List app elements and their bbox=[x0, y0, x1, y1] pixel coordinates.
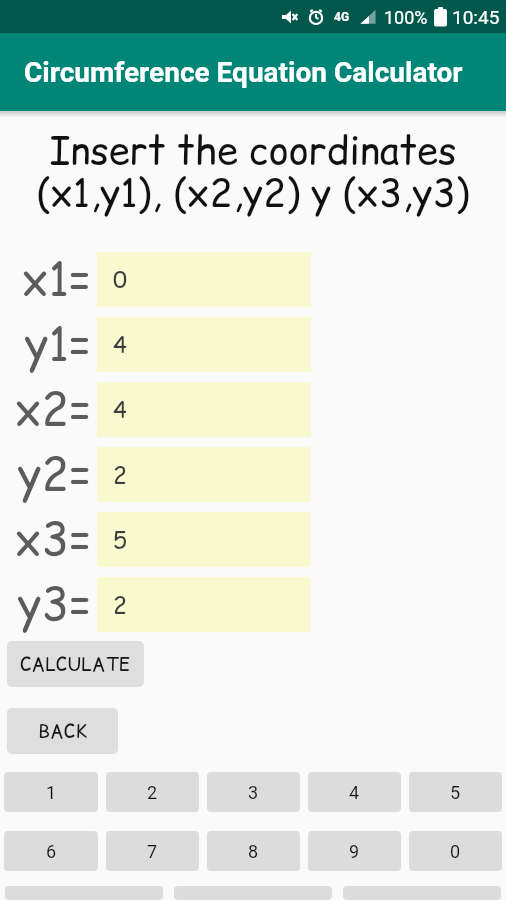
staticText: 0 bbox=[113, 264, 128, 296]
staticText: 9 bbox=[349, 841, 360, 862]
button[interactable]: 5 bbox=[97, 512, 311, 567]
button[interactable]: CALCULATE bbox=[7, 641, 144, 687]
button[interactable]: 2 bbox=[97, 447, 311, 502]
staticText: 10:45 bbox=[452, 6, 500, 28]
staticText: Circumference Equation Calculator bbox=[24, 56, 463, 89]
staticText: 1 bbox=[46, 782, 57, 803]
staticText: 4G bbox=[334, 10, 350, 24]
button[interactable]: 8 bbox=[207, 831, 300, 871]
button[interactable]: 4 bbox=[308, 772, 401, 812]
staticText: 5 bbox=[113, 524, 128, 556]
button[interactable]: 7 bbox=[106, 831, 199, 871]
button[interactable]: 2 bbox=[106, 772, 199, 812]
staticText: 100% bbox=[384, 7, 428, 28]
staticText: x3= bbox=[15, 508, 92, 571]
staticText: 2 bbox=[147, 782, 158, 803]
staticText: 3 bbox=[248, 782, 259, 803]
staticText: 2 bbox=[113, 459, 128, 491]
staticText: 2 bbox=[113, 589, 128, 621]
button[interactable]: 4 bbox=[97, 382, 311, 437]
staticText: 4 bbox=[113, 329, 128, 361]
button[interactable]: 9 bbox=[308, 831, 401, 871]
staticText: 6 bbox=[46, 841, 57, 862]
staticText: 8 bbox=[248, 841, 259, 862]
staticText: x2= bbox=[15, 378, 92, 441]
button[interactable]: 5 bbox=[409, 772, 502, 812]
button[interactable]: 1 bbox=[4, 772, 98, 812]
button[interactable]: 6 bbox=[4, 831, 98, 871]
staticText: BACK bbox=[38, 718, 87, 745]
button[interactable]: BACK bbox=[7, 708, 118, 754]
staticText: y2= bbox=[18, 443, 92, 506]
staticText: 7 bbox=[147, 841, 158, 862]
button[interactable]: 0 bbox=[409, 831, 502, 871]
staticText: 0 bbox=[450, 841, 461, 862]
staticText: y1= bbox=[25, 313, 92, 376]
staticText: 4 bbox=[349, 782, 360, 803]
staticText: x1= bbox=[22, 248, 92, 311]
staticText: 5 bbox=[450, 782, 461, 803]
button[interactable]: 3 bbox=[207, 772, 300, 812]
staticText: Insert the coordinates (x1,y1), (x2,y2) … bbox=[36, 124, 470, 219]
button[interactable]: 2 bbox=[97, 577, 311, 632]
button[interactable]: 4 bbox=[97, 317, 311, 372]
staticText: 4 bbox=[113, 394, 128, 426]
staticText: CALCULATE bbox=[20, 651, 131, 678]
staticText: y3= bbox=[18, 573, 92, 636]
button[interactable]: 0 bbox=[97, 252, 311, 307]
